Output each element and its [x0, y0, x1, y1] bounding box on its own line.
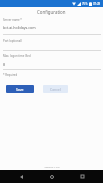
staticText: * Required — [3, 73, 18, 77]
staticText: Save — [16, 87, 24, 92]
staticText: 8 — [3, 62, 6, 67]
staticText: Version 1.0.0 — [44, 165, 60, 168]
staticText: Max. logon time (Sec) — [3, 54, 32, 58]
button[interactable]: Recents — [72, 170, 92, 183]
staticText: Cancel — [50, 87, 61, 92]
button[interactable]: Save — [6, 85, 34, 93]
button[interactable]: Back — [11, 170, 31, 183]
button[interactable]: Cancel — [43, 85, 68, 93]
staticText: Port (optional) — [3, 39, 22, 43]
button[interactable]: Home — [42, 170, 62, 183]
staticText: Configuration — [37, 9, 66, 15]
staticText: 75% — [82, 2, 88, 6]
staticText: bct.ai-holidays.com — [3, 25, 36, 30]
staticText: 07:28 — [93, 2, 101, 6]
staticText: Server name * — [3, 18, 22, 22]
